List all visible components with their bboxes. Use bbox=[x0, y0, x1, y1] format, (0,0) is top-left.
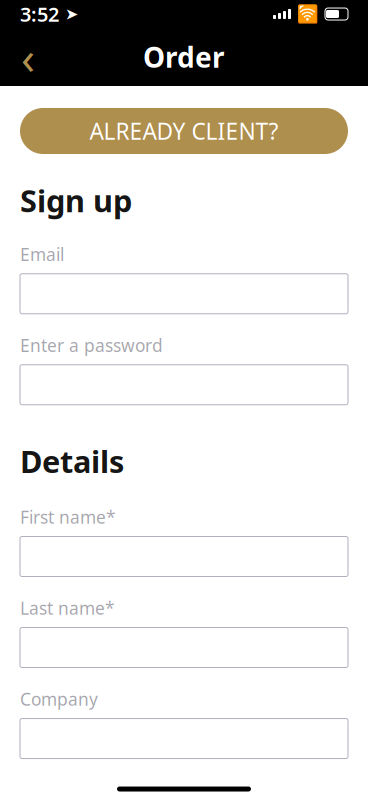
button[interactable]: Company bbox=[20, 718, 348, 758]
staticText: ➤ bbox=[59, 5, 78, 23]
staticText: ALREADY CLIENT? bbox=[89, 116, 278, 146]
staticText: Order bbox=[143, 38, 225, 76]
staticText: Sign up bbox=[20, 180, 132, 221]
button[interactable]: Last name* bbox=[20, 627, 348, 667]
staticText: Last name* bbox=[20, 596, 115, 619]
staticText: 🛜 bbox=[297, 4, 319, 24]
staticText: ‹ bbox=[21, 27, 35, 87]
button[interactable]: Email bbox=[20, 274, 348, 314]
staticText: Details bbox=[20, 441, 124, 481]
button[interactable]: Enter a password bbox=[20, 365, 348, 405]
button[interactable]: ALREADY CLIENT? bbox=[20, 108, 348, 154]
staticText: Email bbox=[20, 243, 64, 266]
staticText: First name* bbox=[20, 505, 116, 528]
button[interactable]: Back bbox=[6, 35, 50, 79]
button[interactable]: First name* bbox=[20, 536, 348, 576]
staticText: 3:52 bbox=[20, 1, 59, 27]
staticText: Phone number bbox=[20, 778, 143, 800]
staticText: Enter a password bbox=[20, 334, 163, 357]
staticText: Company bbox=[20, 687, 98, 710]
